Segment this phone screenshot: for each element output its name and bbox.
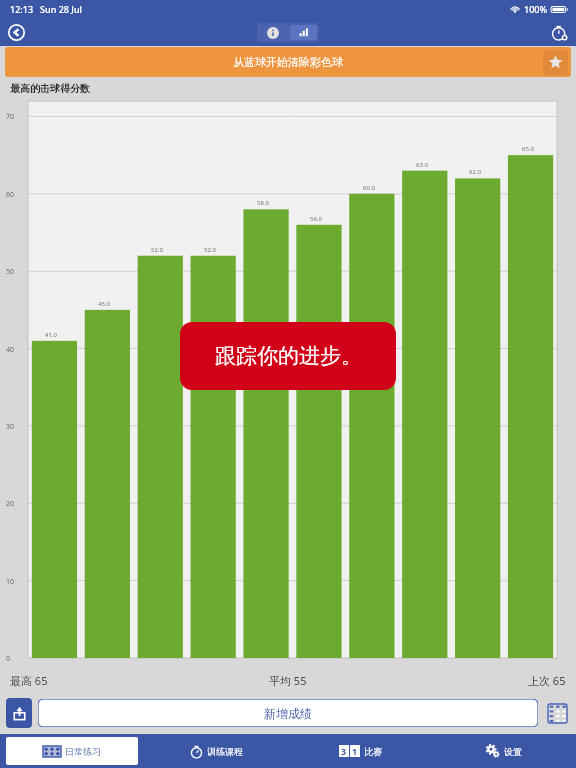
staticText: 65.0	[522, 145, 534, 153]
staticText: 比赛	[364, 746, 382, 757]
staticText: 日常练习	[65, 746, 101, 757]
button[interactable]: Share	[6, 698, 32, 728]
staticText: 60	[6, 190, 15, 200]
button[interactable]: Add timer	[547, 20, 571, 44]
button[interactable]: 日常练习	[6, 737, 138, 765]
staticText: 62.0	[469, 168, 481, 176]
button[interactable]: Favourite	[543, 50, 568, 75]
staticText: 平均 55	[269, 673, 307, 688]
staticText: 41.0	[45, 331, 57, 339]
staticText: 最高 65	[10, 673, 48, 688]
staticText: 跟踪你的进步。	[215, 343, 362, 369]
button[interactable]: 跟踪你的进步。	[180, 322, 396, 390]
staticText: 10	[6, 577, 15, 587]
button[interactable]: 训练课程	[150, 737, 282, 765]
button[interactable]: 新增成绩	[38, 699, 538, 727]
staticText: 新增成绩	[264, 706, 312, 721]
staticText: 56.0	[310, 215, 322, 223]
staticText: 训练课程	[207, 746, 243, 757]
button[interactable]: Back	[4, 20, 28, 44]
staticText: 45.0	[98, 300, 110, 308]
button[interactable]: 从蓝球开始清除彩色球	[5, 47, 571, 77]
staticText: 1	[352, 745, 358, 757]
button[interactable]: Statistics	[290, 25, 317, 40]
button[interactable]: Table view	[544, 698, 570, 728]
staticText: 3	[341, 745, 347, 757]
staticText: 20	[6, 499, 15, 509]
button[interactable]: 3	[294, 737, 426, 765]
staticText: 最高的击球得分数	[10, 82, 90, 95]
staticText: 上次 65	[528, 673, 566, 688]
staticText: 100%	[524, 3, 548, 15]
button[interactable]: Info	[257, 23, 288, 42]
staticText: 60.0	[363, 184, 375, 192]
button[interactable]: 设置	[438, 737, 570, 765]
staticText: 50	[6, 267, 15, 277]
staticText: 0	[6, 654, 11, 664]
staticText: 12:13 Sun 28 Jul	[10, 3, 82, 15]
staticText: 70	[6, 112, 15, 122]
staticText: 设置	[504, 746, 522, 757]
staticText: 52.0	[151, 246, 163, 254]
staticText: 52.0	[204, 246, 216, 254]
staticText: 58.0	[257, 199, 269, 207]
staticText: 63.0	[416, 161, 428, 169]
staticText: 从蓝球开始清除彩色球	[233, 55, 343, 69]
staticText: 40	[6, 345, 15, 355]
staticText: 30	[6, 422, 15, 432]
